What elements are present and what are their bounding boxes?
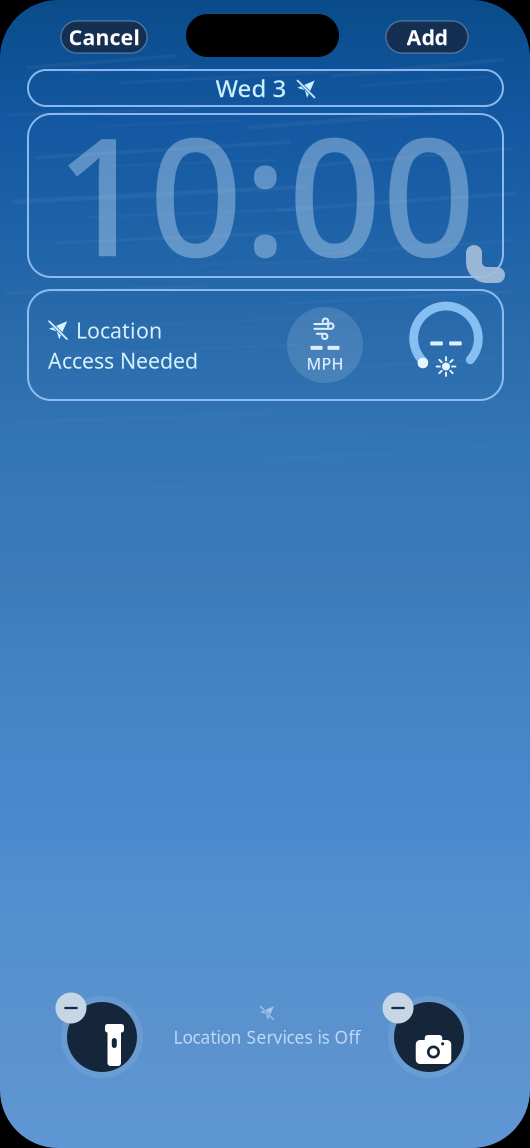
staticText: Location Services is Off (173, 1025, 360, 1048)
staticText: Cancel (68, 23, 139, 51)
staticText: Access Needed (48, 346, 198, 375)
button[interactable]: Add (386, 21, 468, 53)
button[interactable]: Remove Flashlight (47, 982, 157, 1092)
staticText: Location (76, 316, 162, 344)
staticText: MPH (306, 353, 343, 374)
button[interactable]: 10:00 (28, 114, 503, 277)
staticText: Add (406, 23, 447, 51)
button[interactable]: Location (28, 290, 503, 400)
staticText: Wed 3 (215, 72, 286, 104)
button[interactable]: Wed 3 (28, 70, 503, 106)
button[interactable]: Cancel (61, 21, 147, 53)
staticText: 10:00 (55, 84, 476, 301)
button[interactable]: Remove Camera (374, 982, 484, 1092)
